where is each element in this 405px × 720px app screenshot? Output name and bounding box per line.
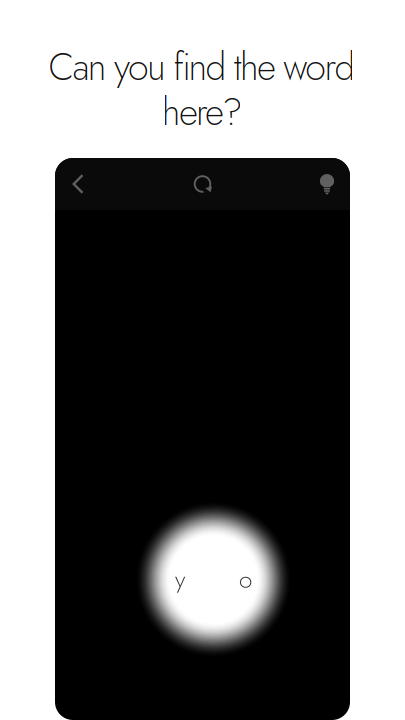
staticText: y	[175, 562, 185, 597]
staticText: here?	[162, 85, 242, 139]
button[interactable]: Back	[55, 158, 101, 210]
button[interactable]: Hint	[304, 158, 350, 210]
staticText: o	[239, 562, 252, 597]
staticText: Can you find the word	[48, 40, 355, 94]
button[interactable]: Restart	[179, 158, 225, 210]
